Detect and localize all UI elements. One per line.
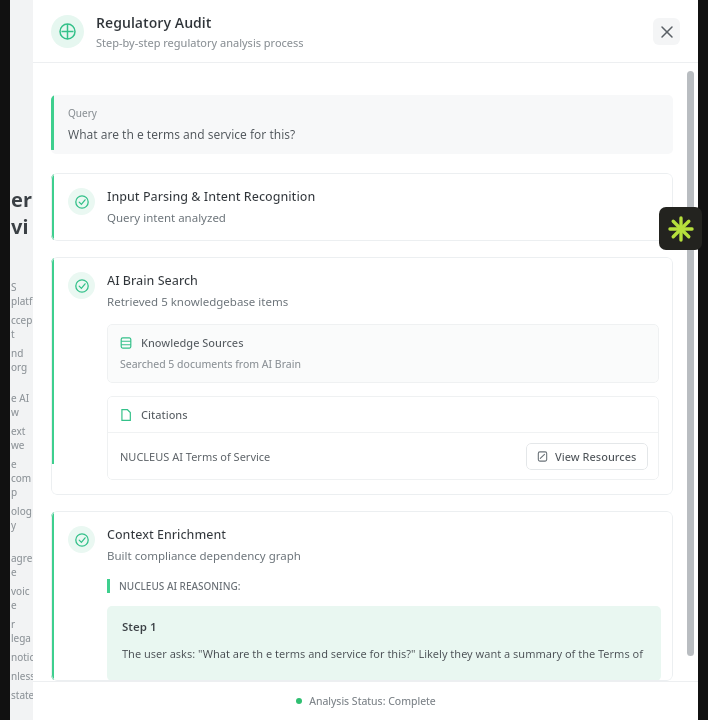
staticText: Retrieved 5 knowledgebase items — [107, 294, 289, 310]
staticText: The user asks: "What are th e terms and … — [122, 646, 649, 667]
staticText: Query — [68, 106, 97, 120]
staticText: e AI w — [11, 391, 35, 419]
staticText: NUCLEUS AI Terms of Service — [120, 449, 271, 464]
button[interactable]: Context Enrichment — [51, 511, 673, 681]
staticText: Input Parsing & Intent Recognition — [107, 188, 316, 205]
staticText: NUCLEUS AI REASONING: — [119, 579, 241, 593]
staticText: Citations — [141, 407, 188, 422]
staticText: state — [11, 688, 35, 702]
staticText: Step-by-step regulatory analysis process — [96, 35, 304, 50]
staticText: ervi — [11, 186, 35, 240]
staticText: Query intent analyzed — [107, 210, 226, 226]
staticText: ccept — [11, 313, 35, 341]
staticText: Step 1 — [122, 619, 157, 635]
staticText: nd org — [11, 346, 35, 374]
staticText: notic — [11, 650, 35, 664]
staticText: Context Enrichment — [107, 526, 227, 543]
button[interactable]: AI assistant — [659, 207, 702, 250]
staticText: Searched 5 documents from AI Brain — [120, 357, 301, 371]
staticText: View Resources — [555, 449, 637, 464]
staticText: r lega — [11, 617, 35, 645]
staticText: Knowledge Sources — [141, 335, 244, 350]
button[interactable]: Input Parsing & Intent Recognition — [51, 173, 673, 241]
button[interactable]: View Resources — [526, 443, 648, 470]
staticText: agree — [11, 551, 35, 579]
button[interactable]: Knowledge Sources — [107, 324, 659, 383]
staticText: S platf — [11, 280, 35, 308]
button[interactable]: Close — [653, 18, 680, 45]
staticText: AI Brain Search — [107, 272, 198, 289]
staticText: voice — [11, 584, 35, 612]
staticText: e comp — [11, 457, 35, 499]
staticText: Regulatory Audit — [96, 13, 212, 32]
staticText: What are th e terms and service for this… — [68, 126, 296, 142]
button[interactable]: AI Brain Search — [51, 257, 673, 495]
staticText: nless — [11, 669, 35, 683]
staticText: Built compliance dependency graph — [107, 548, 301, 564]
staticText: day no — [11, 719, 35, 720]
staticText: Analysis Status: Complete — [309, 694, 436, 708]
staticText: ology — [11, 504, 35, 532]
button[interactable]: Query — [51, 95, 673, 154]
staticText: ext we — [11, 424, 35, 452]
